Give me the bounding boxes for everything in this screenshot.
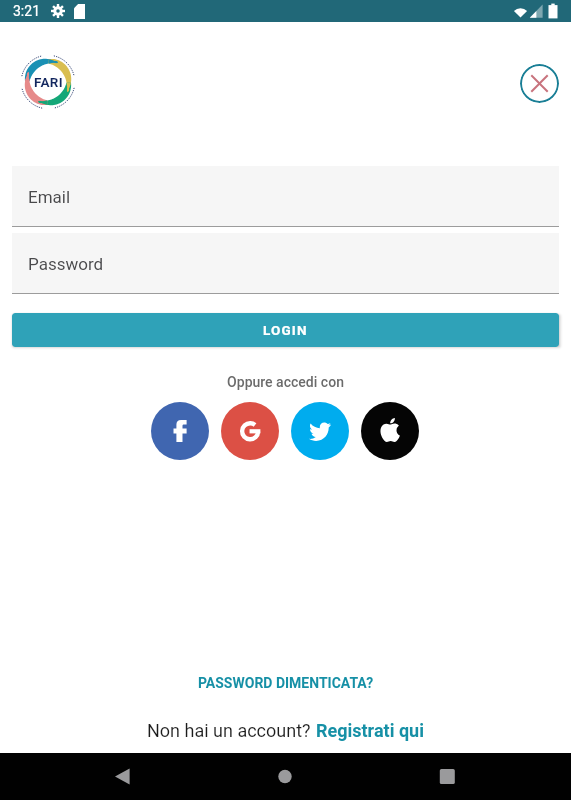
button[interactable]: PASSWORD DIMENTICATA?	[0, 671, 571, 695]
button[interactable]: LOGIN	[12, 313, 559, 347]
button[interactable]: Email	[12, 166, 559, 227]
staticText: PASSWORD DIMENTICATA?	[198, 675, 374, 691]
button[interactable]: Registrati qui	[316, 720, 424, 741]
button[interactable]: Sign in with Twitter	[291, 402, 349, 460]
staticText: LOGIN	[263, 322, 308, 338]
button[interactable]: Sign in with Facebook	[151, 402, 209, 460]
staticText: Non hai un account?	[147, 720, 316, 741]
button[interactable]: Close	[520, 64, 559, 103]
button[interactable]: Sign in with Google	[221, 402, 279, 460]
staticText: Email	[28, 187, 71, 207]
staticText: Password	[28, 254, 104, 274]
button[interactable]: Sign in with Apple	[361, 402, 419, 460]
staticText: 3:21	[13, 3, 40, 19]
staticText: FARI	[34, 74, 63, 90]
staticText: Oppure accedi con	[0, 374, 571, 390]
button[interactable]: Password	[12, 233, 559, 294]
